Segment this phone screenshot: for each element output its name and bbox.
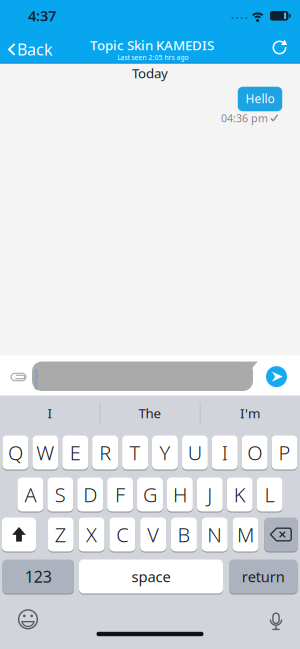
staticText: 04:36 pm (221, 111, 268, 125)
staticText: Topic Skin KAMEDIS (90, 36, 214, 54)
staticText: X (86, 521, 97, 548)
staticText: F (115, 481, 125, 508)
staticText: B (177, 521, 190, 548)
staticText: I (222, 439, 228, 466)
staticText: The (138, 404, 161, 422)
staticText: Y (159, 439, 170, 466)
staticText: V (147, 521, 159, 548)
staticText: R (99, 439, 111, 466)
staticText: Q (8, 439, 23, 466)
staticText: S (55, 481, 66, 508)
staticText: W (36, 439, 54, 466)
staticText: Hello (245, 91, 274, 107)
staticText: T (129, 439, 140, 466)
staticText: space (131, 567, 170, 586)
staticText: P (278, 439, 290, 466)
staticText: Last seen 2:05 hrs ago (117, 53, 188, 62)
staticText: Back (17, 39, 53, 60)
staticText: 4:37 (28, 6, 56, 25)
staticText: K (234, 481, 246, 508)
staticText: J (207, 481, 212, 508)
staticText: N (207, 521, 222, 548)
staticText: 123 (25, 566, 52, 587)
staticText: C (116, 521, 128, 548)
staticText: L (265, 481, 275, 508)
staticText: Z (55, 521, 67, 548)
staticText: H (173, 481, 187, 508)
staticText: I (47, 404, 52, 422)
staticText: U (188, 439, 202, 466)
staticText: D (83, 481, 97, 508)
staticText: O (247, 439, 262, 466)
staticText: Today (132, 64, 168, 82)
staticText: I'm (240, 404, 260, 422)
staticText: M (237, 521, 254, 548)
staticText: A (24, 481, 36, 508)
staticText: E (70, 439, 81, 466)
staticText: return (242, 567, 285, 586)
staticText: G (143, 481, 157, 508)
